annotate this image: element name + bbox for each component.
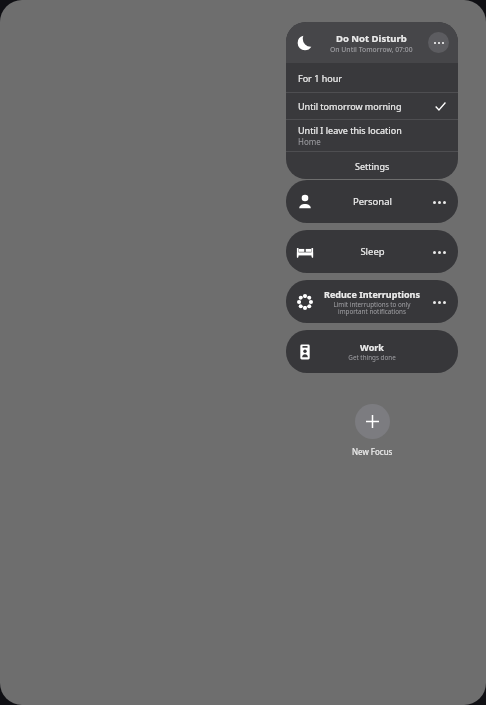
staticText: Reduce Interruptions	[324, 288, 420, 300]
button[interactable]: More options	[428, 291, 450, 313]
button[interactable]: Personal	[286, 180, 458, 223]
button[interactable]: New Focus	[355, 404, 390, 439]
staticText: Limit interruptions to only important no…	[333, 300, 411, 316]
button[interactable]: Until tomorrow morning	[286, 93, 458, 119]
staticText: Until tomorrow morning	[298, 100, 402, 112]
staticText: Sleep	[360, 245, 385, 258]
staticText: New Focus	[352, 446, 393, 457]
button[interactable]: Work	[286, 330, 458, 373]
staticText: Settings	[355, 160, 390, 172]
button[interactable]: More options	[428, 241, 450, 263]
button[interactable]: Until I leave this location	[286, 120, 458, 151]
staticText: Work	[360, 341, 384, 353]
button[interactable]: Settings	[286, 152, 458, 179]
button[interactable]: For 1 hour	[286, 63, 458, 92]
staticText: Do Not Disturb	[336, 32, 407, 45]
staticText: On Until Tomorrow, 07:00	[330, 45, 413, 54]
staticText: For 1 hour	[298, 72, 342, 84]
button[interactable]: More options	[428, 191, 450, 213]
staticText: Home	[298, 136, 321, 147]
button[interactable]: Do Not Disturb	[286, 22, 458, 63]
button[interactable]: Sleep	[286, 230, 458, 273]
staticText: Personal	[353, 195, 392, 208]
staticText: Until I leave this location	[298, 124, 402, 136]
button[interactable]: More options	[428, 32, 449, 53]
button[interactable]: Reduce Interruptions	[286, 280, 458, 323]
staticText: Get things done	[348, 353, 396, 362]
